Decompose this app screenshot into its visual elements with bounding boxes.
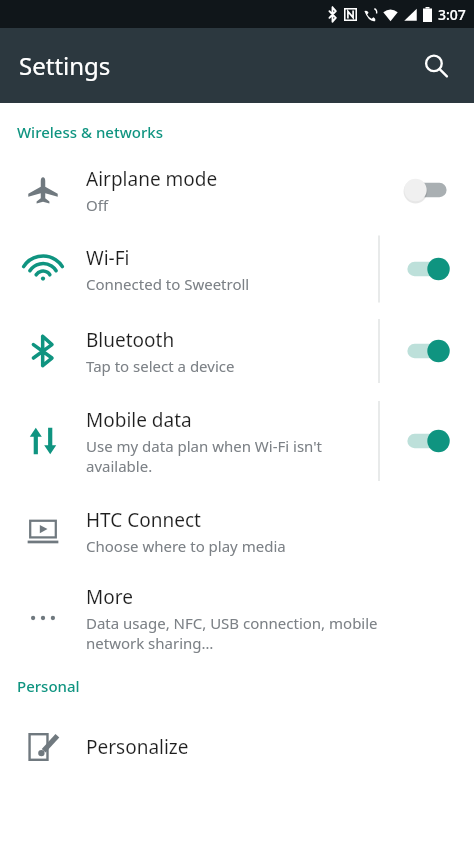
staticText: Airplane mode: [86, 166, 218, 192]
button[interactable]: Mobile data: [0, 391, 474, 491]
staticText: Personalize: [86, 734, 189, 760]
staticText: Wi-Fi: [86, 245, 130, 271]
staticText: Use my data plan when Wi-Fi isn't availa…: [86, 436, 322, 476]
button[interactable]: Toggle on: [399, 334, 455, 368]
button[interactable]: Airplane mode: [0, 153, 474, 227]
staticText: Mobile data: [86, 407, 192, 433]
button[interactable]: HTC Connect: [0, 491, 474, 571]
staticText: Choose where to play media: [86, 536, 286, 556]
staticText: Wireless & networks: [17, 122, 163, 142]
staticText: Tap to select a device: [86, 356, 235, 376]
staticText: Connected to Sweetroll: [86, 274, 250, 294]
staticText: Off: [86, 195, 109, 215]
button[interactable]: Toggle on: [399, 252, 455, 286]
staticText: HTC Connect: [86, 507, 201, 533]
button[interactable]: Toggle off: [399, 173, 455, 207]
staticText: More: [86, 584, 133, 610]
button[interactable]: Toggle on: [399, 424, 455, 458]
button[interactable]: Wi-Fi: [0, 227, 474, 311]
staticText: 3:07: [438, 5, 466, 24]
staticText: Settings: [19, 49, 111, 82]
button[interactable]: Personalize: [0, 707, 474, 787]
button[interactable]: More: [0, 571, 474, 665]
staticText: Bluetooth: [86, 327, 175, 353]
button[interactable]: Bluetooth: [0, 311, 474, 391]
staticText: Personal: [17, 676, 80, 696]
button[interactable]: Search: [412, 42, 460, 90]
staticText: Data usage, NFC, USB connection, mobile …: [86, 613, 378, 653]
